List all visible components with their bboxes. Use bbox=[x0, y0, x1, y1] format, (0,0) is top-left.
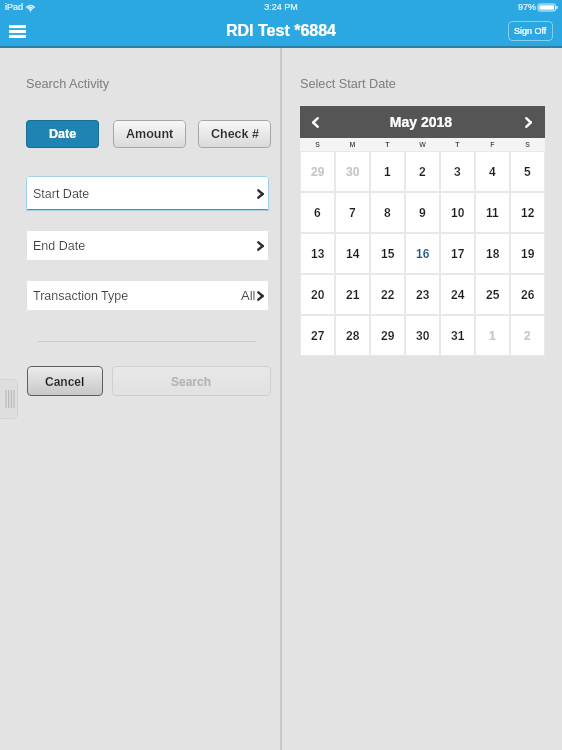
staticText: 2 bbox=[524, 329, 531, 342]
staticText: 97% bbox=[518, 2, 537, 12]
staticText: 30 bbox=[416, 329, 430, 342]
button[interactable]: 7 bbox=[335, 192, 370, 233]
staticText: 12 bbox=[521, 206, 535, 219]
staticText: 21 bbox=[346, 288, 360, 301]
staticText: M bbox=[335, 141, 370, 149]
staticText: T bbox=[370, 141, 405, 149]
button[interactable]: 22 bbox=[370, 274, 405, 315]
button[interactable]: 23 bbox=[405, 274, 440, 315]
staticText: Start Date bbox=[33, 187, 90, 201]
button[interactable]: 24 bbox=[440, 274, 475, 315]
button[interactable]: 15 bbox=[370, 233, 405, 274]
button[interactable]: 18 bbox=[475, 233, 510, 274]
staticText: 6 bbox=[314, 206, 321, 219]
button[interactable]: 2 bbox=[405, 151, 440, 192]
button[interactable]: 4 bbox=[475, 151, 510, 192]
staticText: 5 bbox=[524, 165, 531, 178]
staticText: 30 bbox=[346, 165, 360, 178]
staticText: 11 bbox=[486, 206, 499, 219]
button[interactable]: Resize panel bbox=[0, 379, 18, 419]
button[interactable]: 1 bbox=[370, 151, 405, 192]
button[interactable]: Cancel bbox=[27, 366, 103, 396]
staticText: 2 bbox=[419, 165, 426, 178]
staticText: 16 bbox=[416, 247, 430, 260]
button[interactable]: 1 bbox=[475, 315, 510, 356]
button[interactable]: 12 bbox=[510, 192, 545, 233]
button[interactable]: 5 bbox=[510, 151, 545, 192]
button[interactable]: 9 bbox=[405, 192, 440, 233]
button[interactable]: 28 bbox=[335, 315, 370, 356]
staticText: Search Activity bbox=[26, 77, 110, 91]
staticText: 25 bbox=[486, 288, 500, 301]
staticText: S bbox=[510, 141, 545, 149]
staticText: 10 bbox=[451, 206, 465, 219]
button[interactable]: 29 bbox=[300, 151, 335, 192]
button[interactable]: Amount bbox=[113, 120, 186, 148]
button[interactable]: Menu bbox=[3, 17, 31, 45]
button[interactable]: Transaction Type bbox=[26, 280, 269, 311]
button[interactable]: 13 bbox=[300, 233, 335, 274]
staticText: 7 bbox=[349, 206, 356, 219]
button[interactable]: 29 bbox=[370, 315, 405, 356]
staticText: Sign Off bbox=[514, 26, 547, 36]
button[interactable]: 20 bbox=[300, 274, 335, 315]
staticText: 18 bbox=[486, 247, 500, 260]
button[interactable]: Previous month bbox=[300, 106, 331, 138]
staticText: 8 bbox=[384, 206, 391, 219]
staticText: End Date bbox=[33, 239, 86, 253]
staticText: S bbox=[300, 141, 335, 149]
button[interactable]: 3 bbox=[440, 151, 475, 192]
button[interactable]: 10 bbox=[440, 192, 475, 233]
button[interactable]: 31 bbox=[440, 315, 475, 356]
staticText: 14 bbox=[346, 247, 360, 260]
staticText: 1 bbox=[489, 329, 496, 342]
button[interactable]: Date bbox=[26, 120, 99, 148]
staticText: 31 bbox=[451, 329, 465, 342]
staticText: T bbox=[440, 141, 475, 149]
button[interactable]: End Date bbox=[26, 230, 269, 261]
button[interactable]: 30 bbox=[405, 315, 440, 356]
staticText: 29 bbox=[311, 165, 325, 178]
staticText: May 2018 bbox=[331, 114, 511, 130]
staticText: 17 bbox=[451, 247, 465, 260]
button[interactable]: Sign Off bbox=[508, 21, 553, 41]
staticText: 22 bbox=[381, 288, 395, 301]
button[interactable]: 11 bbox=[475, 192, 510, 233]
staticText: 3 bbox=[454, 165, 461, 178]
staticText: 13 bbox=[311, 247, 325, 260]
staticText: 28 bbox=[346, 329, 360, 342]
staticText: Select Start Date bbox=[300, 77, 396, 91]
staticText: Cancel bbox=[45, 375, 85, 388]
button[interactable]: 19 bbox=[510, 233, 545, 274]
button[interactable]: Next month bbox=[511, 106, 545, 138]
staticText: 20 bbox=[311, 288, 325, 301]
staticText: Search bbox=[171, 375, 212, 388]
button[interactable]: 16 bbox=[405, 233, 440, 274]
button[interactable]: 8 bbox=[370, 192, 405, 233]
button[interactable]: 25 bbox=[475, 274, 510, 315]
button[interactable]: 14 bbox=[335, 233, 370, 274]
button[interactable]: 26 bbox=[510, 274, 545, 315]
button[interactable]: 30 bbox=[335, 151, 370, 192]
staticText: F bbox=[475, 141, 510, 149]
button[interactable]: Search bbox=[112, 366, 271, 396]
button[interactable]: 21 bbox=[335, 274, 370, 315]
button[interactable]: Start Date bbox=[26, 176, 269, 211]
staticText: All bbox=[241, 288, 256, 303]
button[interactable]: 2 bbox=[510, 315, 545, 356]
staticText: Transaction Type bbox=[33, 289, 129, 303]
staticText: 3:24 PM bbox=[0, 2, 562, 12]
staticText: 19 bbox=[521, 247, 535, 260]
button[interactable]: 6 bbox=[300, 192, 335, 233]
button[interactable]: 27 bbox=[300, 315, 335, 356]
staticText: 1 bbox=[384, 165, 391, 178]
staticText: 15 bbox=[381, 247, 395, 260]
button[interactable]: Check # bbox=[198, 120, 271, 148]
staticText: iPad bbox=[5, 2, 24, 12]
staticText: 26 bbox=[521, 288, 535, 301]
button[interactable]: 17 bbox=[440, 233, 475, 274]
staticText: 4 bbox=[489, 165, 496, 178]
staticText: W bbox=[405, 141, 440, 149]
staticText: 23 bbox=[416, 288, 430, 301]
staticText: RDI Test *6884 bbox=[226, 22, 336, 40]
